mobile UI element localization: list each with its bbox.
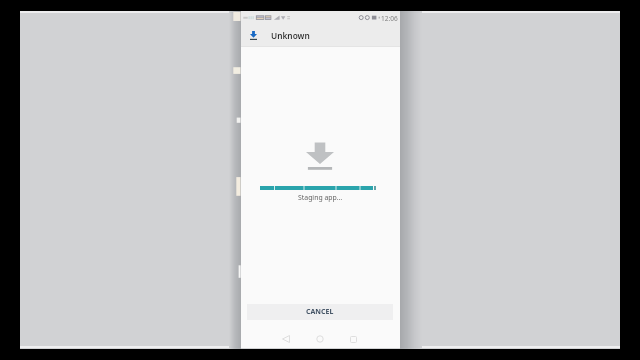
staticText: Staging app…	[298, 193, 343, 202]
staticText: CANCEL	[306, 307, 334, 317]
button[interactable]: Recent apps	[345, 331, 361, 347]
button[interactable]: CANCEL	[247, 304, 393, 320]
button[interactable]: Home	[312, 331, 328, 347]
staticText: 12:06	[381, 14, 398, 23]
staticText: Unknown	[271, 30, 310, 41]
button[interactable]: Downloads	[245, 25, 261, 45]
button[interactable]: Back	[278, 331, 294, 347]
